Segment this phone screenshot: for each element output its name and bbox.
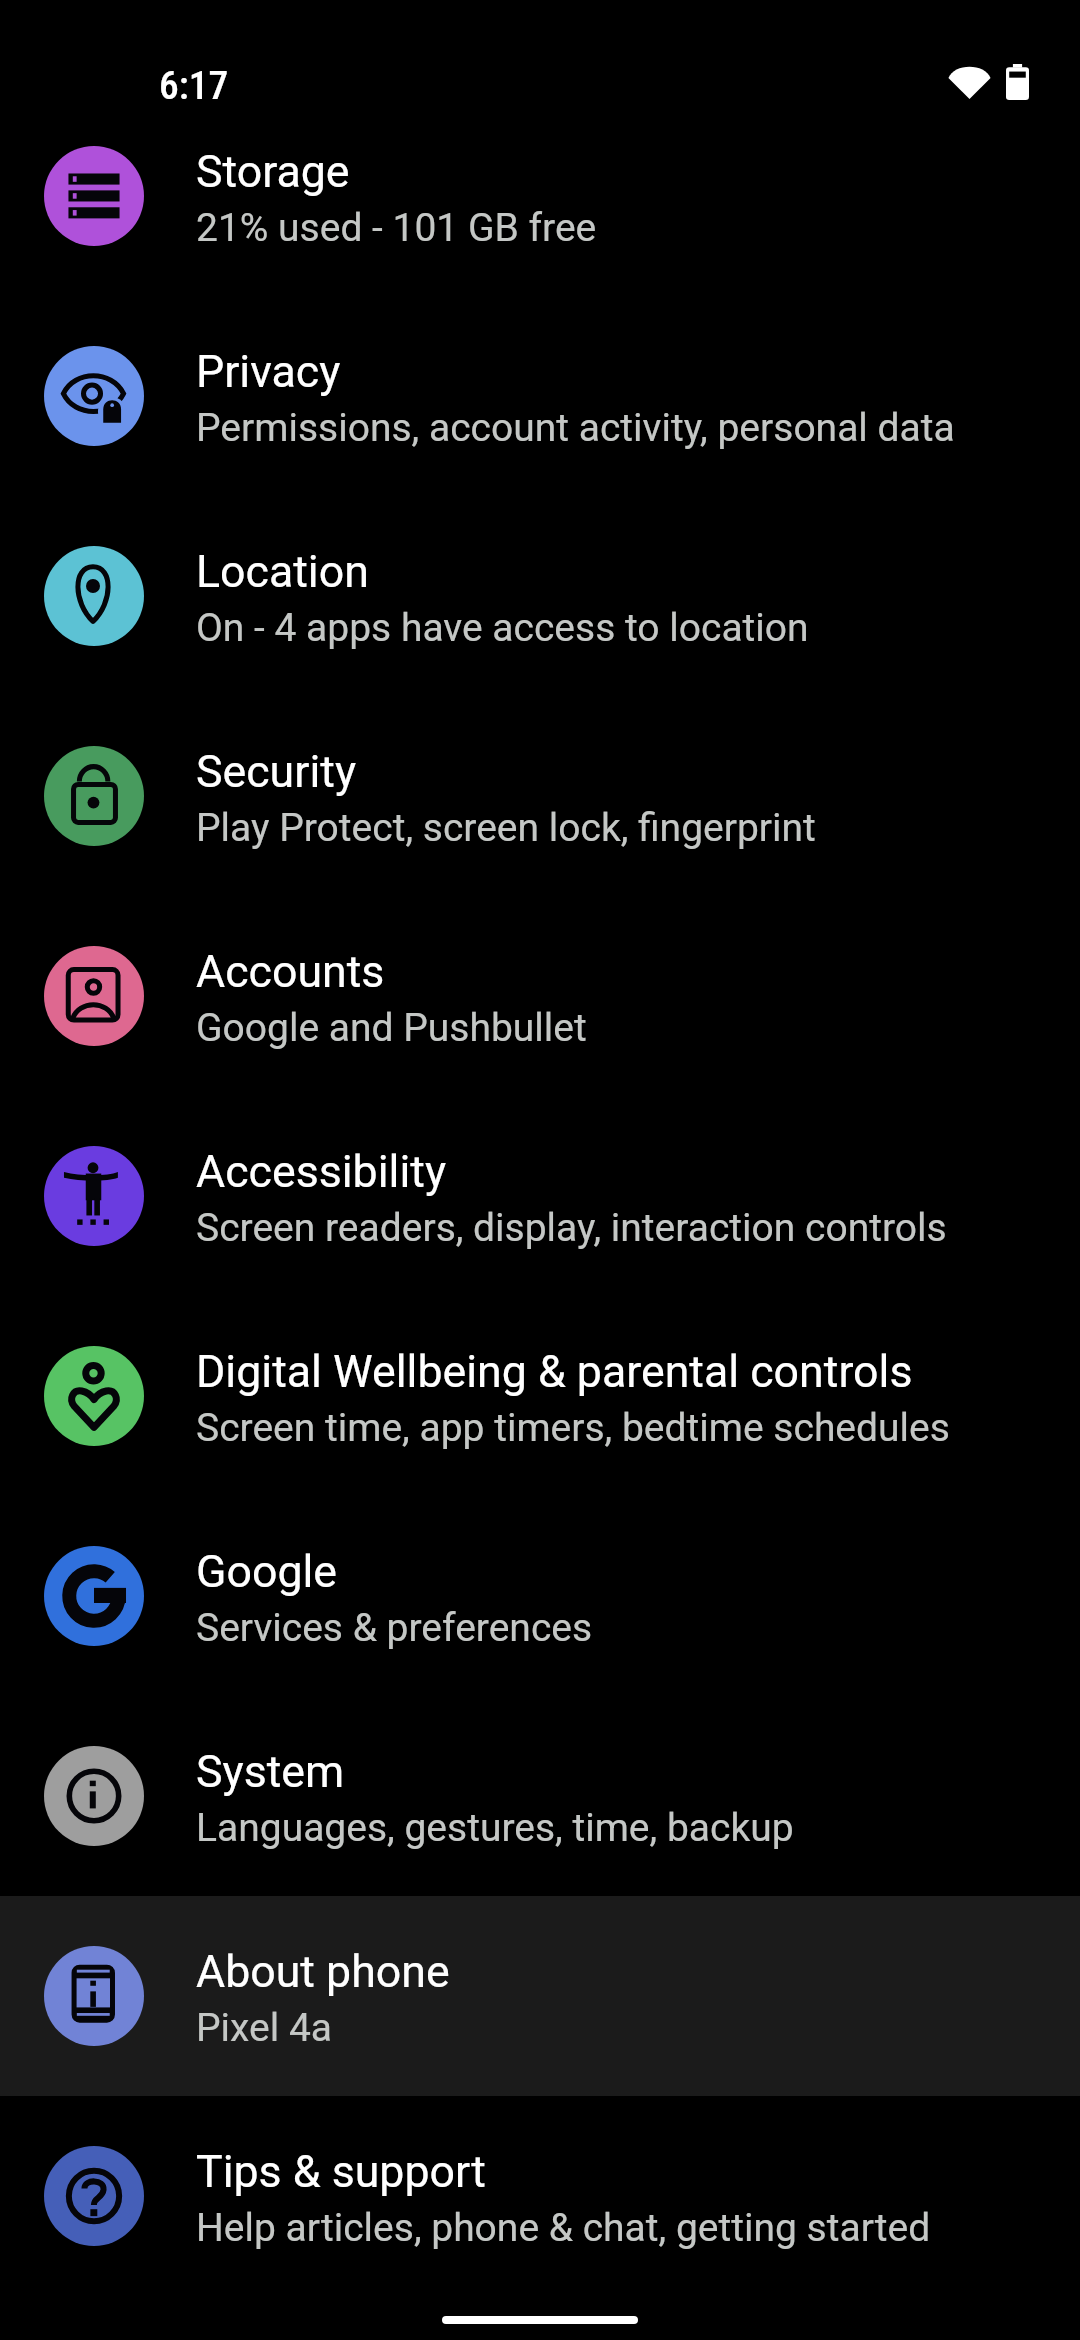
button[interactable]: System bbox=[0, 1696, 1080, 1896]
other: Wi-Fi connected bbox=[948, 63, 991, 99]
staticText: About phone bbox=[196, 1946, 450, 1998]
button[interactable]: Privacy bbox=[0, 296, 1080, 496]
button[interactable]: Security bbox=[0, 696, 1080, 896]
staticText: 6:17 bbox=[159, 62, 229, 108]
button[interactable]: Storage bbox=[0, 96, 1080, 296]
staticText: Accounts bbox=[196, 946, 385, 998]
button[interactable]: Digital Wellbeing & parental controls bbox=[0, 1296, 1080, 1496]
staticText: Google and Pushbullet bbox=[196, 1005, 587, 1051]
staticText: Accessibility bbox=[196, 1146, 447, 1198]
button[interactable]: Location bbox=[0, 496, 1080, 696]
button[interactable]: Accounts bbox=[0, 896, 1080, 1096]
staticText: Pixel 4a bbox=[196, 2005, 333, 2051]
other: Battery bbox=[1006, 64, 1029, 100]
staticText: Languages, gestures, time, backup bbox=[196, 1805, 794, 1851]
button[interactable]: About phone bbox=[0, 1896, 1080, 2096]
staticText: Location bbox=[196, 546, 369, 598]
staticText: Privacy bbox=[196, 346, 341, 398]
staticText: On - 4 apps have access to location bbox=[196, 605, 809, 651]
staticText: Security bbox=[196, 746, 357, 798]
staticText: Screen time, app timers, bedtime schedul… bbox=[196, 1405, 950, 1451]
button[interactable]: Google bbox=[0, 1496, 1080, 1696]
staticText: Digital Wellbeing & parental controls bbox=[196, 1346, 913, 1398]
staticText: Services & preferences bbox=[196, 1605, 593, 1651]
staticText: Tips & support bbox=[196, 2146, 486, 2198]
staticText: Play Protect, screen lock, fingerprint bbox=[196, 805, 816, 851]
staticText: 21% used - 101 GB free bbox=[196, 205, 597, 251]
staticText: Permissions, account activity, personal … bbox=[196, 405, 955, 451]
staticText: System bbox=[196, 1746, 345, 1798]
staticText: Screen readers, display, interaction con… bbox=[196, 1205, 947, 1251]
staticText: Storage bbox=[196, 146, 350, 198]
staticText: Google bbox=[196, 1546, 338, 1598]
staticText: Help articles, phone & chat, getting sta… bbox=[196, 2205, 931, 2251]
button[interactable]: Accessibility bbox=[0, 1096, 1080, 1296]
button[interactable]: Tips & support bbox=[0, 2096, 1080, 2296]
